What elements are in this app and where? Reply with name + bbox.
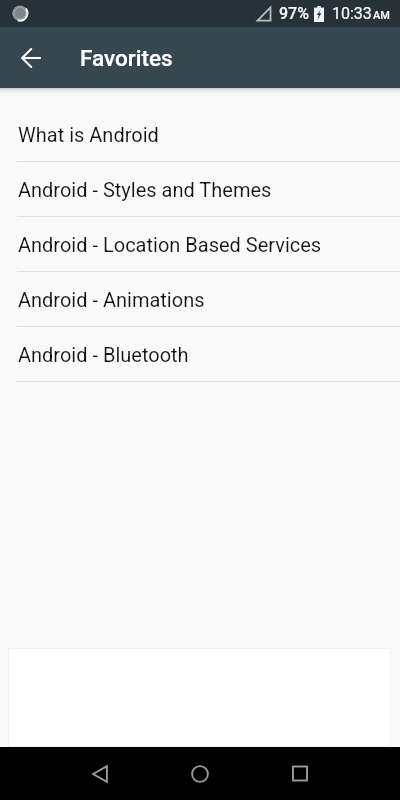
- staticText: Favorites: [80, 45, 173, 71]
- staticText: AM: [373, 9, 390, 22]
- staticText: Android - Location Based Services: [18, 233, 322, 256]
- staticText: Android - Animations: [18, 288, 205, 311]
- staticText: 97%: [279, 4, 309, 23]
- staticText: What is Android: [18, 123, 159, 146]
- button[interactable]: Back: [8, 35, 53, 80]
- button[interactable]: Android - Styles and Themes: [0, 162, 400, 217]
- button[interactable]: Back: [50, 747, 150, 800]
- staticText: Android - Styles and Themes: [18, 178, 272, 201]
- button[interactable]: Android - Animations: [0, 272, 400, 327]
- button[interactable]: Android - Location Based Services: [0, 217, 400, 272]
- button[interactable]: What is Android: [0, 107, 400, 162]
- button[interactable]: Home: [150, 747, 250, 800]
- button[interactable]: Android - Bluetooth: [0, 327, 400, 382]
- staticText: 10:33: [332, 4, 372, 23]
- staticText: Android - Bluetooth: [18, 343, 189, 366]
- button[interactable]: Recent apps: [250, 747, 350, 800]
